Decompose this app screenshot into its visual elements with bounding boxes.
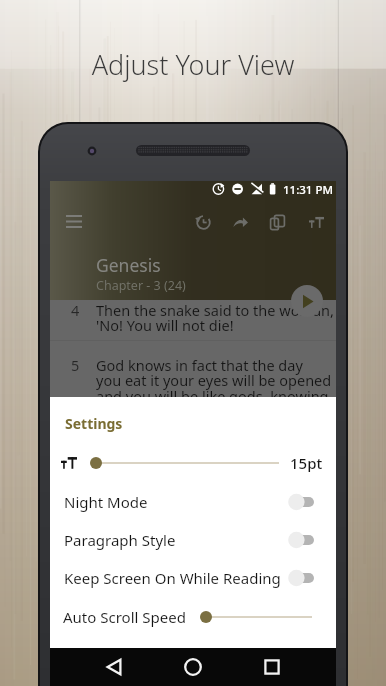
button[interactable]: Night Mode — [64, 484, 314, 520]
staticText: Keep Screen On While Reading — [64, 568, 281, 588]
staticText: Genesis — [96, 253, 161, 277]
staticText: 5 — [71, 355, 96, 375]
button[interactable]: 15pt — [50, 445, 336, 481]
staticText: Auto Scroll Speed — [63, 607, 186, 627]
staticText: Paragraph Style — [64, 530, 176, 550]
staticText: Settings — [65, 414, 123, 433]
button[interactable]: Back — [92, 648, 136, 686]
button[interactable]: Home — [171, 648, 215, 686]
button[interactable]: Share — [222, 203, 258, 241]
button[interactable]: Recent apps — [250, 648, 294, 686]
staticText: Chapter - 3 (24) — [96, 277, 186, 294]
button[interactable]: Keep Screen On While Reading — [64, 560, 314, 596]
staticText: 11:31 PM — [283, 182, 334, 198]
staticText: Then the snake said to the woman, 'No! Y… — [96, 300, 334, 335]
staticText: Adjust Your View — [0, 46, 386, 83]
staticText: 15pt — [290, 453, 323, 473]
button[interactable]: Menu — [55, 203, 92, 240]
button[interactable]: Paragraph Style — [64, 522, 314, 558]
button[interactable]: Text size — [298, 203, 334, 241]
button[interactable]: Copy — [259, 203, 295, 241]
staticText: 4 — [71, 300, 96, 320]
button[interactable]: Play audio — [291, 285, 323, 317]
button[interactable]: Auto Scroll Speed — [50, 599, 336, 635]
staticText: Night Mode — [64, 492, 148, 512]
staticText: God knows in fact that the day you eat i… — [96, 355, 332, 406]
button[interactable]: Reading history — [185, 203, 221, 241]
